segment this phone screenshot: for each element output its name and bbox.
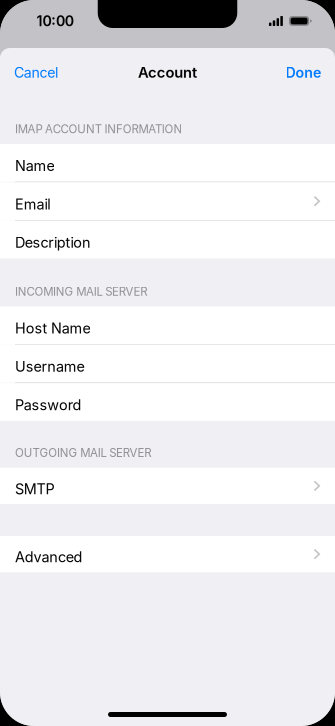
staticText: OUTGOING MAIL SERVER bbox=[15, 446, 151, 460]
staticText: Username bbox=[15, 358, 85, 375]
staticText: Cancel bbox=[14, 64, 58, 81]
staticText: SMTP bbox=[15, 480, 54, 498]
button[interactable]: Password bbox=[0, 383, 335, 421]
staticText: INCOMING MAIL SERVER bbox=[15, 284, 147, 298]
button[interactable]: Description bbox=[0, 221, 335, 258]
button[interactable]: Username bbox=[0, 345, 335, 382]
staticText: Email bbox=[15, 195, 50, 213]
button[interactable]: Host Name bbox=[0, 306, 335, 344]
staticText: IMAP ACCOUNT INFORMATION bbox=[15, 122, 182, 136]
staticText: Done bbox=[286, 64, 321, 81]
button[interactable]: Cancel bbox=[0, 48, 72, 97]
button[interactable]: Email bbox=[0, 182, 335, 220]
staticText: Advanced bbox=[15, 548, 83, 566]
button[interactable]: Done bbox=[272, 48, 335, 97]
staticText: Password bbox=[15, 396, 82, 414]
button[interactable]: SMTP bbox=[0, 468, 335, 504]
staticText: Host Name bbox=[15, 319, 90, 337]
staticText: Name bbox=[15, 157, 54, 174]
button[interactable]: Name bbox=[0, 144, 335, 182]
staticText: Description bbox=[15, 234, 91, 251]
staticText: 10:00 bbox=[37, 12, 74, 29]
staticText: Account bbox=[138, 64, 197, 81]
button[interactable]: Advanced bbox=[0, 536, 335, 572]
